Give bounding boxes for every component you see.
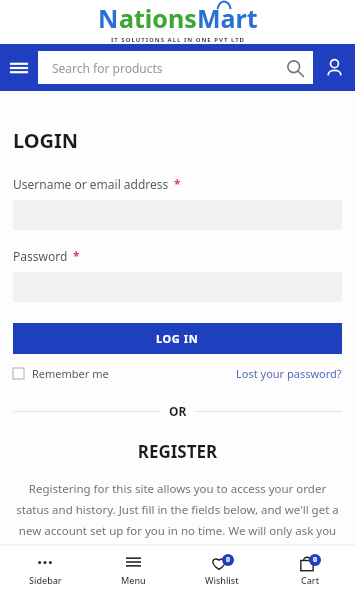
button[interactable]: 0 bbox=[266, 546, 354, 592]
staticText: Wishlist bbox=[205, 574, 239, 586]
staticText: ations bbox=[119, 1, 197, 35]
staticText: Sidebar bbox=[29, 574, 62, 586]
staticText: 0 bbox=[313, 555, 318, 565]
staticText: Username or email address bbox=[13, 176, 169, 192]
staticText: 0 bbox=[226, 555, 231, 565]
staticText: Registering for this site allows you to … bbox=[16, 481, 339, 545]
staticText: REGISTER bbox=[13, 440, 342, 463]
staticText: Menu bbox=[121, 574, 146, 586]
staticText: Mart bbox=[197, 1, 258, 35]
button[interactable]: Lost your password? bbox=[236, 366, 342, 381]
button[interactable]: Open navigation menu bbox=[0, 44, 38, 91]
staticText: LOG IN bbox=[156, 331, 199, 346]
staticText: OR bbox=[169, 403, 187, 419]
staticText: N bbox=[98, 1, 119, 35]
button[interactable]: LOG IN bbox=[13, 323, 342, 354]
staticText: * bbox=[73, 248, 80, 264]
staticText: LOGIN bbox=[13, 127, 79, 154]
staticText: IT SOLUTIONS ALL IN ONE PVT LTD bbox=[111, 36, 245, 44]
button[interactable]: Remember me bbox=[13, 366, 109, 381]
button[interactable]: 0 bbox=[178, 546, 266, 592]
staticText: Search for products bbox=[52, 60, 277, 76]
button[interactable]: Menu bbox=[89, 546, 177, 592]
staticText: Password bbox=[13, 248, 68, 264]
button[interactable]: Search for products bbox=[38, 51, 313, 84]
button[interactable]: Sidebar bbox=[1, 546, 89, 592]
staticText: * bbox=[174, 176, 181, 192]
staticText: Remember me bbox=[32, 366, 109, 381]
staticText: Cart bbox=[301, 574, 320, 586]
other: Search bbox=[277, 51, 313, 84]
button[interactable]: My account bbox=[313, 44, 355, 91]
